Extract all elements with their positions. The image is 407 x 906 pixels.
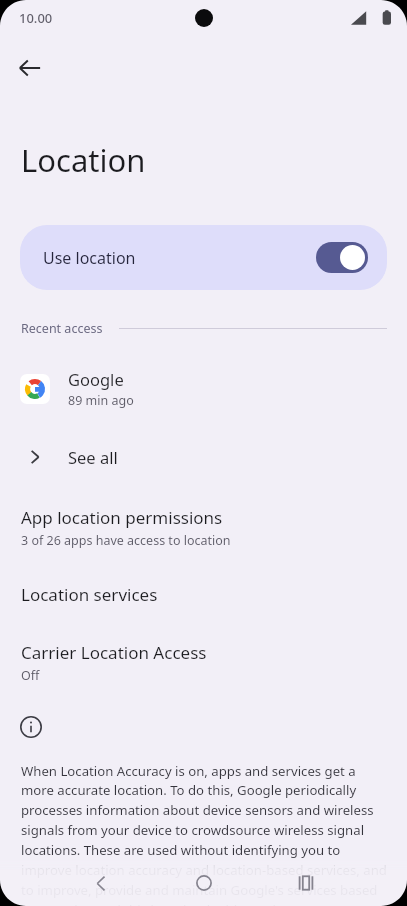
staticText: Off bbox=[21, 667, 40, 684]
staticText: Use location bbox=[43, 247, 136, 269]
staticText: Carrier Location Access bbox=[21, 641, 207, 664]
staticText: 3 of 26 apps have access to location bbox=[21, 532, 231, 549]
staticText: See all bbox=[68, 446, 118, 468]
button[interactable]: See all bbox=[0, 436, 407, 478]
staticText: Location bbox=[21, 139, 146, 181]
button[interactable]: App location permissions bbox=[0, 504, 407, 551]
staticText: When Location Accuracy is on, apps and s… bbox=[21, 762, 389, 906]
button[interactable]: Carrier Location Access bbox=[0, 639, 407, 686]
staticText: 10.00 bbox=[19, 9, 53, 27]
button[interactable]: Back bbox=[6, 44, 54, 92]
button[interactable]: Use location bbox=[20, 225, 387, 290]
staticText: Location services bbox=[21, 583, 158, 606]
button[interactable]: Location services bbox=[0, 581, 407, 608]
staticText: Recent access bbox=[21, 320, 103, 337]
staticText: 89 min ago bbox=[68, 392, 134, 409]
button[interactable]: Home bbox=[181, 860, 227, 906]
button[interactable]: Recent apps bbox=[283, 860, 329, 906]
button[interactable]: Back bbox=[78, 860, 124, 906]
button[interactable]: Google bbox=[0, 366, 407, 411]
staticText: Google bbox=[68, 368, 124, 390]
staticText: App location permissions bbox=[21, 506, 223, 529]
